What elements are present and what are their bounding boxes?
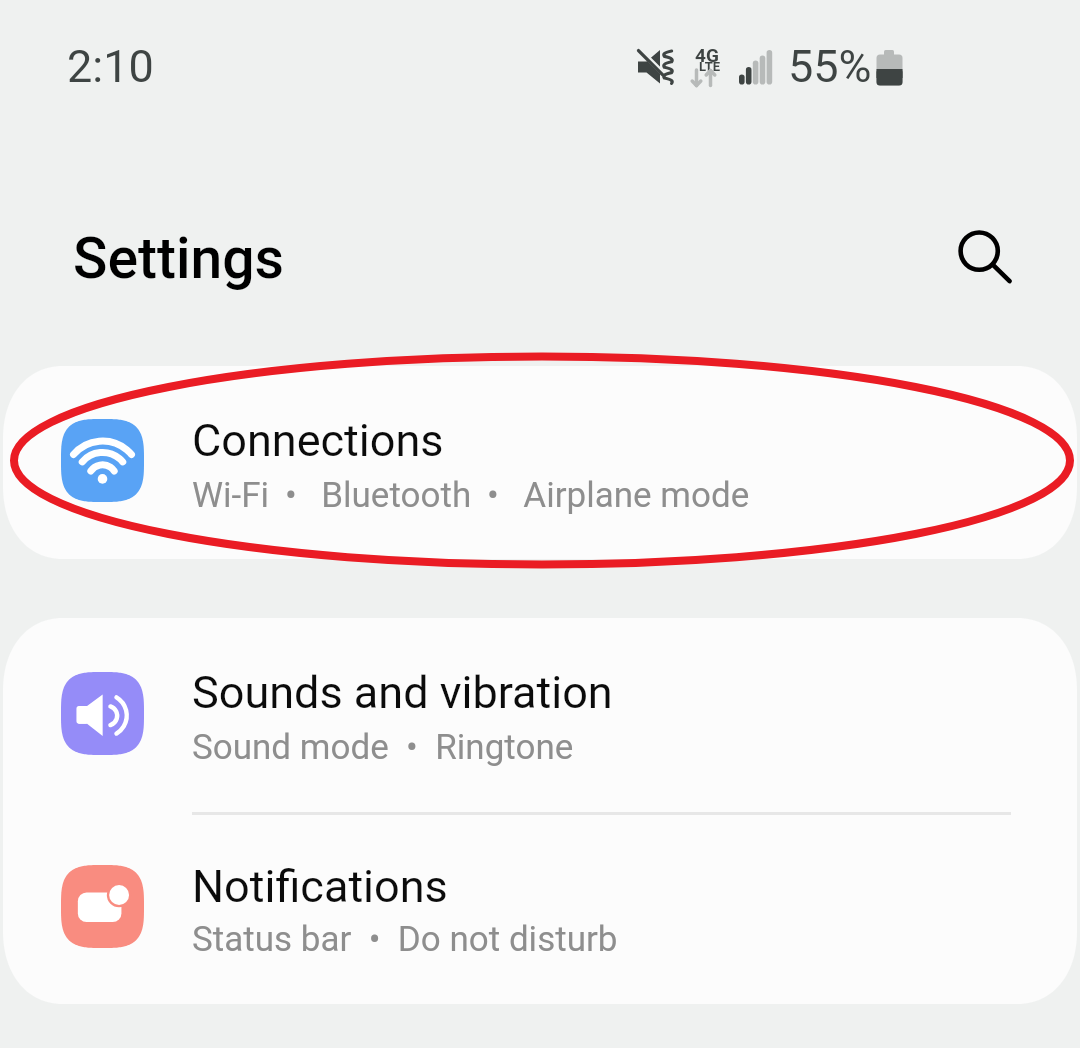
staticText: Wi-Fi • Bluetooth • Airplane mode xyxy=(192,475,750,516)
other: Sound off, vibrate xyxy=(637,50,677,86)
staticText: 4G xyxy=(695,44,719,66)
staticText: Sounds and vibration xyxy=(192,666,613,719)
staticText: Sound mode • Ringtone xyxy=(192,727,574,768)
staticText: 2:10 xyxy=(67,40,154,93)
other: Signal strength xyxy=(739,50,773,86)
staticText: Settings xyxy=(73,225,285,292)
button[interactable]: Search xyxy=(930,202,1030,302)
staticText: Notifications xyxy=(192,860,448,913)
staticText: LTE xyxy=(699,59,721,74)
button[interactable]: Connections xyxy=(3,366,1077,559)
staticText: Status bar • Do not disturb xyxy=(192,919,618,960)
staticText: Connections xyxy=(192,414,444,467)
other: Battery 55 percent xyxy=(876,50,908,92)
button[interactable]: Sounds and vibration xyxy=(3,618,1077,813)
button[interactable]: Notifications xyxy=(3,813,1077,1004)
staticText: 55% xyxy=(788,40,872,93)
